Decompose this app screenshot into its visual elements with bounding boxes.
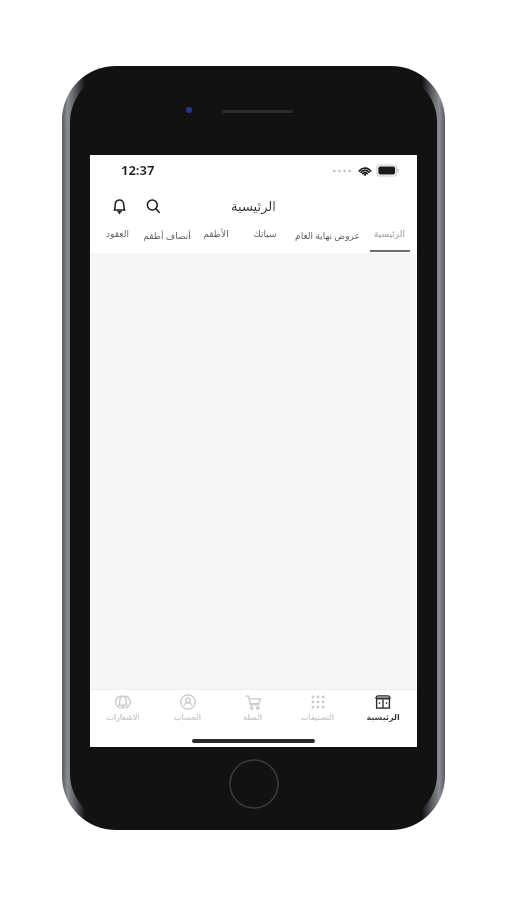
button[interactable]: الرئيسية	[365, 227, 414, 253]
button[interactable]: الاشعارات	[90, 694, 155, 735]
button[interactable]: التصنيفات	[285, 694, 350, 735]
staticText: التصنيفات	[301, 713, 334, 722]
staticText: أنصاف أطقم	[143, 229, 191, 241]
staticText: الرئيسية	[374, 229, 405, 239]
staticText: الرئيسية	[231, 199, 276, 214]
staticText: عروض نهاية العام	[295, 229, 360, 241]
button[interactable]: سياتك	[240, 227, 289, 253]
staticText: الاشعارات	[106, 713, 140, 722]
button[interactable]: Notifications	[104, 191, 134, 221]
button[interactable]: السلة	[220, 694, 285, 735]
button[interactable]: أنصاف أطقم	[142, 227, 191, 253]
staticText: الرئيسية	[366, 713, 400, 722]
button[interactable]: العقود	[93, 227, 142, 253]
staticText: الأطقم	[203, 229, 229, 239]
button[interactable]: الأطقم	[191, 227, 240, 253]
button[interactable]: Search	[138, 191, 168, 221]
button[interactable]: الحساب	[155, 694, 220, 735]
staticText: السلة	[243, 713, 262, 722]
staticText: الحساب	[174, 713, 201, 722]
staticText: العقود	[106, 229, 129, 239]
staticText: سياتك	[253, 229, 277, 239]
button[interactable]: الرئيسية	[350, 694, 415, 735]
staticText: 12:37	[121, 161, 155, 179]
button[interactable]: عروض نهاية العام	[289, 227, 365, 253]
